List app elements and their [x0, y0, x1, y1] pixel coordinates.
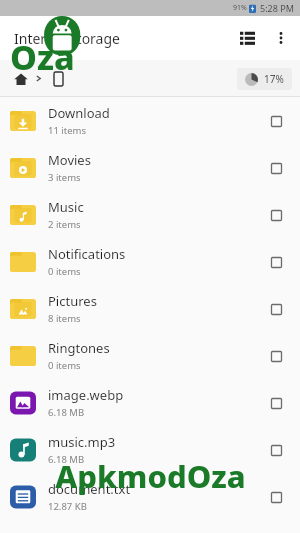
- staticText: 91%: [233, 3, 247, 13]
- button[interactable]: Select document.txt: [264, 485, 288, 509]
- button[interactable]: Home: [10, 68, 32, 90]
- button[interactable]: document.txt: [0, 473, 300, 520]
- button[interactable]: Select Movies: [264, 156, 288, 180]
- staticText: 0 items: [48, 265, 81, 278]
- button[interactable]: Select Ringtones: [264, 344, 288, 368]
- button[interactable]: Select Pictures: [264, 297, 288, 321]
- staticText: Music: [48, 198, 84, 216]
- button[interactable]: image.webp: [0, 379, 300, 426]
- staticText: 8 items: [48, 312, 81, 325]
- staticText: 12.87 KB: [48, 500, 87, 513]
- button[interactable]: Pictures: [0, 285, 300, 332]
- staticText: Oza: [10, 34, 75, 80]
- staticText: document.txt: [48, 480, 131, 498]
- staticText: 3 items: [48, 171, 81, 184]
- staticText: image.webp: [48, 386, 124, 404]
- button[interactable]: Select Download: [264, 109, 288, 133]
- button[interactable]: Ringtones: [0, 332, 300, 379]
- staticText: Pictures: [48, 292, 97, 310]
- staticText: Ringtones: [48, 339, 110, 357]
- button[interactable]: Select image.webp: [264, 391, 288, 415]
- staticText: 11 items: [48, 124, 87, 137]
- button[interactable]: Music: [0, 191, 300, 238]
- staticText: 6.18 MB: [48, 406, 85, 419]
- button[interactable]: Internal storage: [48, 69, 68, 89]
- button[interactable]: Download: [0, 97, 300, 144]
- button[interactable]: music.mp3: [0, 426, 300, 473]
- staticText: 5:28 PM: [260, 2, 294, 14]
- staticText: Download: [48, 104, 110, 122]
- staticText: music.mp3: [48, 433, 116, 451]
- button[interactable]: Select Music: [264, 203, 288, 227]
- staticText: ApkmodOza: [55, 455, 246, 497]
- button[interactable]: 17%: [237, 68, 292, 90]
- staticText: Notifications: [48, 245, 126, 263]
- staticText: Movies: [48, 151, 91, 169]
- button[interactable]: Select music.mp3: [264, 438, 288, 462]
- button[interactable]: View mode: [230, 21, 264, 55]
- button[interactable]: Movies: [0, 144, 300, 191]
- button[interactable]: Notifications: [0, 238, 300, 285]
- staticText: 17%: [264, 72, 284, 86]
- staticText: Internal storage: [14, 29, 230, 48]
- button[interactable]: Select Notifications: [264, 250, 288, 274]
- button[interactable]: More options: [264, 21, 298, 55]
- staticText: 6.18 MB: [48, 453, 85, 466]
- staticText: 0 items: [48, 359, 81, 372]
- staticText: 2 items: [48, 218, 81, 231]
